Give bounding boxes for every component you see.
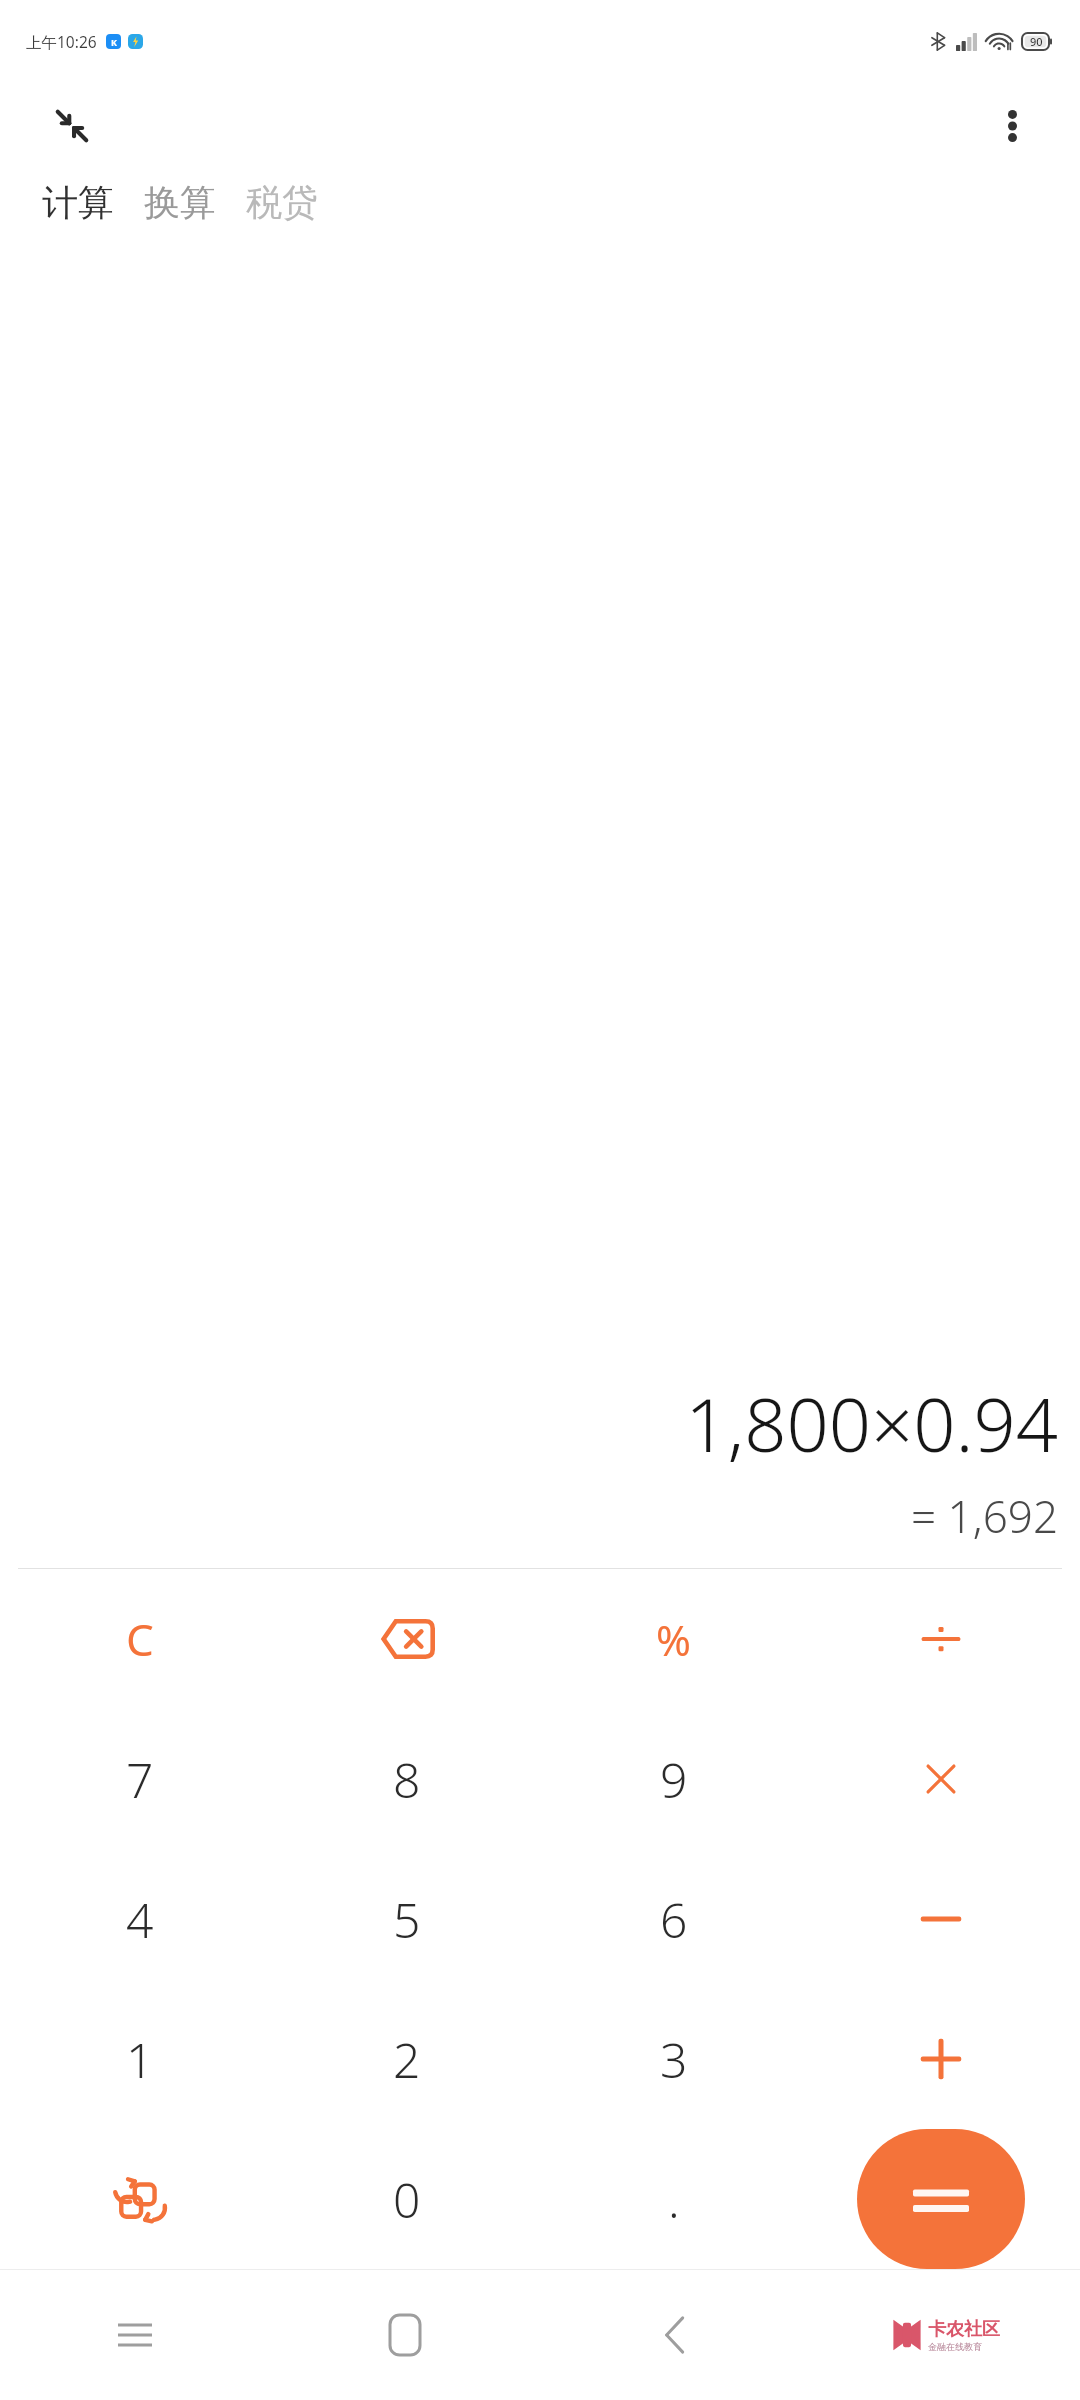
- button[interactable]: Multiply: [807, 1709, 1074, 1849]
- button[interactable]: 5: [273, 1849, 540, 1989]
- button[interactable]: Equals: [857, 2129, 1025, 2269]
- button[interactable]: Clear: [6, 1569, 273, 1709]
- staticText: = 1,692: [911, 1486, 1058, 1546]
- button[interactable]: 7: [6, 1709, 273, 1849]
- button[interactable]: 3: [540, 1989, 807, 2129]
- staticText: 8: [393, 1747, 421, 1812]
- staticText: 2: [393, 2027, 421, 2092]
- button[interactable]: Back: [540, 2270, 810, 2400]
- other: Backspace: [379, 1619, 435, 1659]
- other: Plus: [919, 2037, 963, 2081]
- button[interactable]: Backspace: [273, 1569, 540, 1709]
- button[interactable]: 1: [6, 1989, 273, 2129]
- button[interactable]: 9: [540, 1709, 807, 1849]
- staticText: 计算: [42, 180, 114, 225]
- button[interactable]: %: [540, 1569, 807, 1709]
- staticText: 金融在线教育: [928, 2341, 982, 2352]
- staticText: C: [126, 1609, 154, 1669]
- staticText: 7: [126, 1747, 154, 1812]
- staticText: 90: [1030, 34, 1043, 49]
- staticText: 1,800×0.94: [685, 1373, 1058, 1474]
- staticText: 9: [660, 1747, 688, 1812]
- staticText: .: [668, 2167, 680, 2232]
- staticText: 0: [393, 2167, 421, 2232]
- other: Divide: [919, 1619, 963, 1659]
- staticText: 6: [660, 1887, 688, 1952]
- other: Minus: [919, 1909, 963, 1929]
- staticText: 5: [393, 1887, 421, 1952]
- staticText: 4: [126, 1887, 154, 1952]
- button[interactable]: 0: [273, 2129, 540, 2269]
- staticText: K: [111, 36, 117, 48]
- button[interactable]: 8: [273, 1709, 540, 1849]
- staticText: 换算: [144, 180, 216, 225]
- button[interactable]: 2: [273, 1989, 540, 2129]
- other: Unit conversion: [114, 2173, 166, 2225]
- staticText: %: [656, 1611, 691, 1668]
- button[interactable]: Collapse: [46, 100, 98, 152]
- other: Multiply: [922, 1760, 960, 1798]
- button[interactable]: 换算: [132, 174, 228, 231]
- button[interactable]: Unit conversion: [6, 2129, 273, 2269]
- button[interactable]: 4: [6, 1849, 273, 1989]
- staticText: 上午10:26: [26, 31, 97, 52]
- button[interactable]: More options: [986, 100, 1038, 152]
- staticText: 1: [126, 2027, 154, 2092]
- staticText: 卡农社区: [928, 2318, 1000, 2341]
- button[interactable]: Home: [270, 2270, 540, 2400]
- button[interactable]: 6: [540, 1849, 807, 1989]
- staticText: 税贷: [246, 180, 318, 225]
- staticText: 3: [660, 2027, 688, 2092]
- button[interactable]: Divide: [807, 1569, 1074, 1709]
- button[interactable]: .: [540, 2129, 807, 2269]
- other: Clear: [126, 1609, 154, 1669]
- button[interactable]: Plus: [807, 1989, 1074, 2129]
- button[interactable]: Minus: [807, 1849, 1074, 1989]
- button[interactable]: Recents: [0, 2270, 270, 2400]
- button[interactable]: 税贷: [234, 174, 330, 231]
- button[interactable]: 计算: [30, 174, 126, 231]
